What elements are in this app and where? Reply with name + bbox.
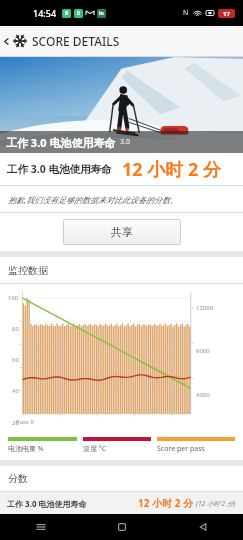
staticText: 0 <box>77 10 80 17</box>
staticText: N <box>183 8 189 18</box>
button[interactable]: Home <box>81 514 162 540</box>
staticText: B <box>65 10 69 17</box>
staticText: 12000 <box>196 304 214 312</box>
staticText: 60 <box>12 356 19 364</box>
staticText: 20 <box>12 419 19 427</box>
staticText: 4000 <box>196 391 210 399</box>
staticText: 12 小时 2 分 <box>138 496 193 510</box>
staticText: 17 <box>223 10 230 18</box>
staticText: 80 <box>12 325 19 333</box>
staticText: Score per pass <box>157 444 235 454</box>
staticText: 电池电量 % <box>8 444 77 454</box>
staticText: 分数 <box>8 472 28 485</box>
staticText: 12 小时 2 分 <box>122 157 221 182</box>
staticText: 监控数据 <box>8 264 48 277</box>
staticText: 共享 <box>111 225 133 239</box>
staticText: 工作 3.0 电池使用寿命 <box>7 498 87 509</box>
staticText: (12 小时 2 分) <box>196 499 236 508</box>
staticText: 3.0 <box>120 137 130 147</box>
staticText: SCORE DETAILS <box>32 33 120 49</box>
staticText: Pass 0 <box>16 418 34 426</box>
staticText: 14:54 <box>33 7 57 19</box>
staticText: 抱歉,我们没有足够的数据来对比此设备的分数。 <box>8 194 179 205</box>
button[interactable]: Recent apps <box>0 514 81 540</box>
button[interactable]: Back <box>0 26 13 56</box>
staticText: 100 <box>8 294 19 302</box>
staticText: 工作 3.0 电池使用寿命 <box>7 162 112 176</box>
staticText: 8000 <box>196 347 210 355</box>
button[interactable]: 工作 3.0 电池使用寿命 <box>0 492 243 514</box>
button[interactable]: 共享 <box>63 219 181 245</box>
staticText: 工作 3.0 电池使用寿命 <box>6 135 116 150</box>
staticText: in <box>99 10 104 17</box>
staticText: 40 <box>12 387 19 395</box>
button[interactable]: Back <box>162 514 243 540</box>
staticText: 温度 °C <box>83 444 151 454</box>
